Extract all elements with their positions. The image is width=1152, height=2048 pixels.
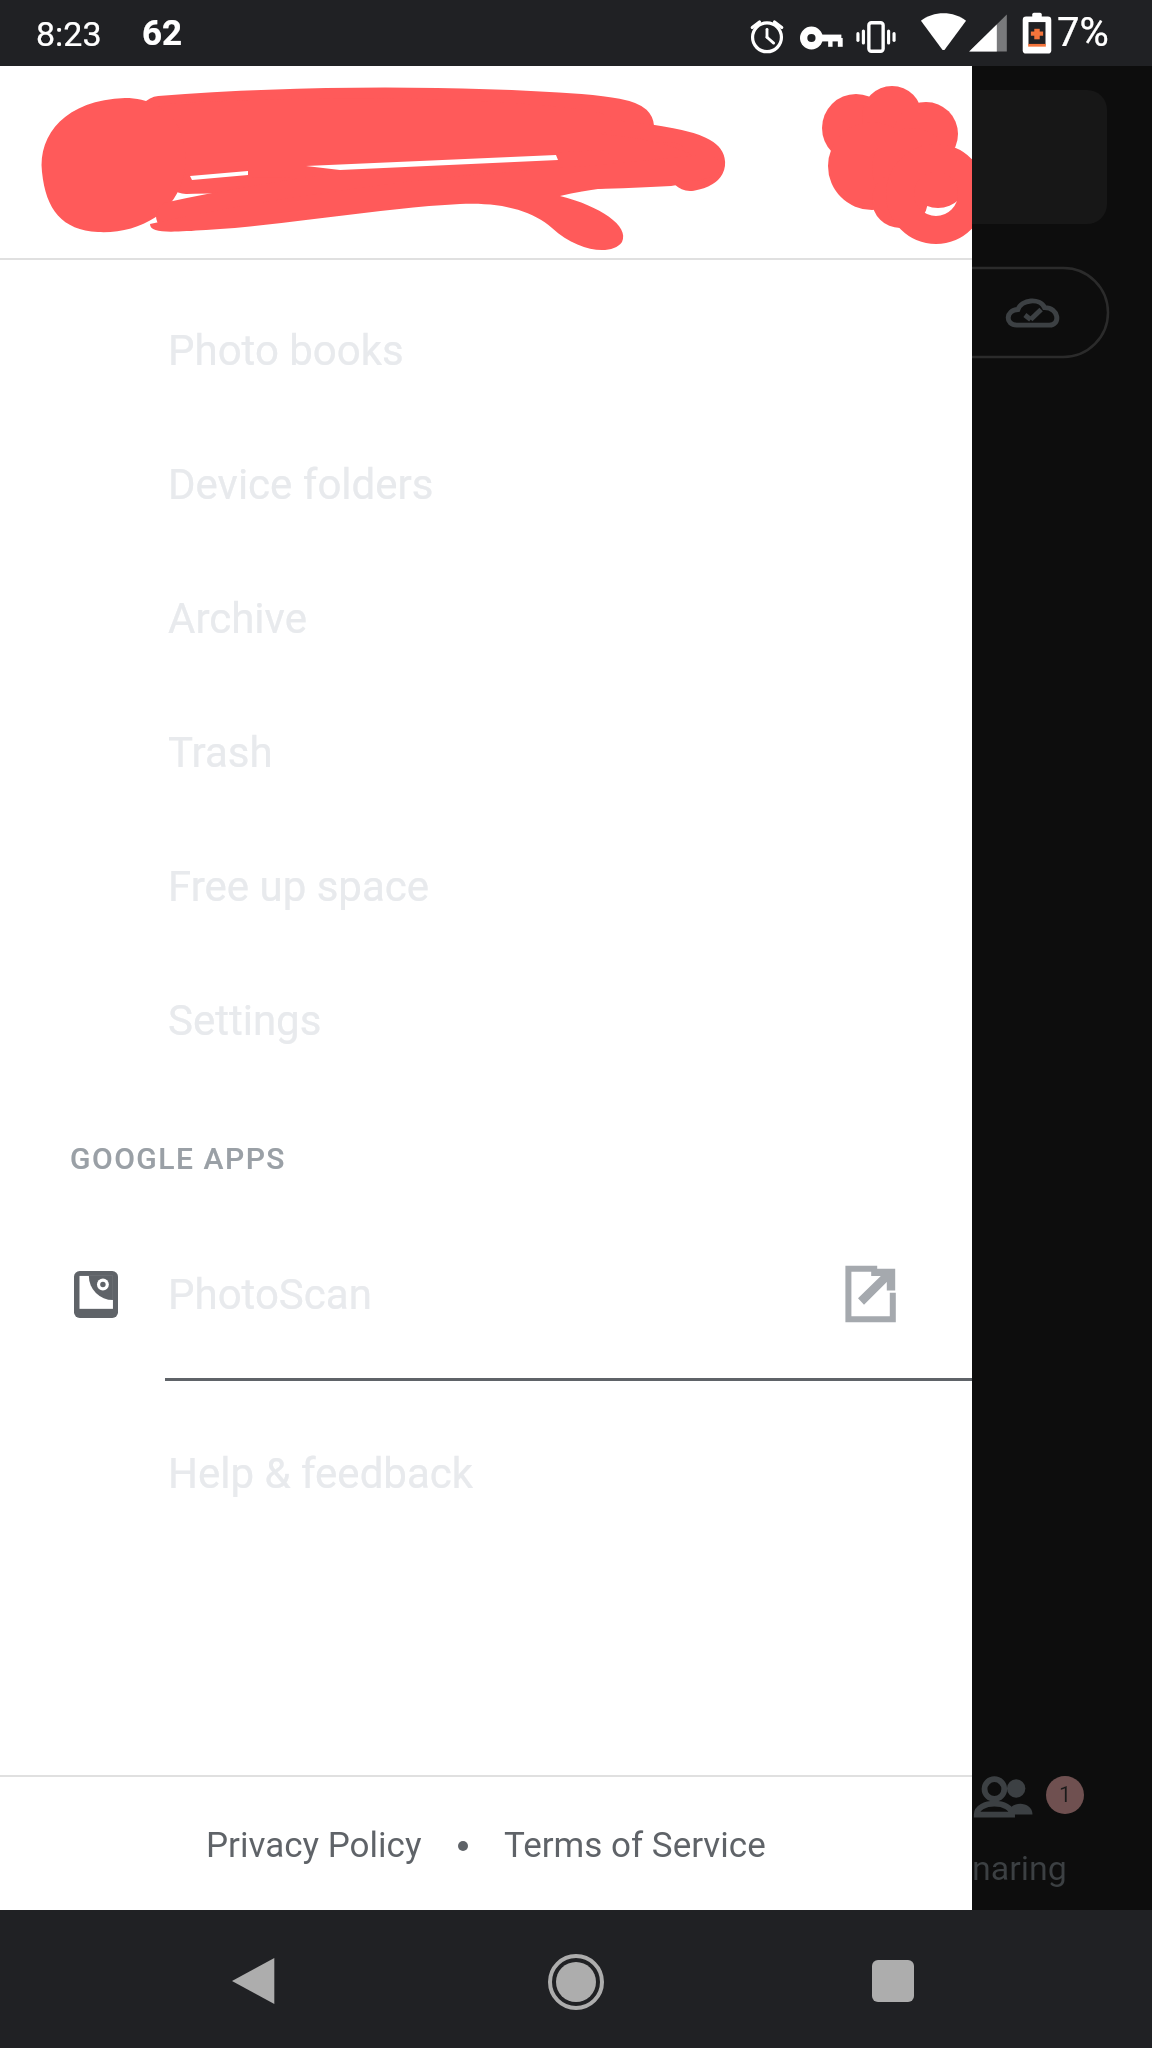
staticText: 7% (1057, 9, 1109, 56)
staticText: Help & feedback (168, 1449, 474, 1498)
button[interactable]: Back (232, 1958, 278, 2004)
button[interactable]: Free up space (0, 829, 972, 943)
button[interactable]: Home (550, 1956, 602, 2008)
button[interactable]: Terms of Service (496, 1813, 774, 1878)
staticText: Privacy Policy (206, 1825, 422, 1866)
button[interactable]: Sharing (960, 1760, 1152, 1910)
button[interactable]: PhotoScan (0, 1232, 972, 1356)
staticText: GOOGLE APPS (70, 1141, 286, 1176)
staticText: Settings (168, 996, 322, 1045)
staticText: Terms of Service (504, 1825, 766, 1866)
staticText: naring (972, 1848, 1067, 1888)
button[interactable]: Photo books (0, 293, 972, 407)
button[interactable]: Device folders (0, 427, 972, 541)
button[interactable]: Account (0, 66, 972, 258)
button[interactable]: Help & feedback (0, 1416, 972, 1530)
button[interactable]: Recents (872, 1960, 914, 2002)
staticText: Photo books (168, 326, 404, 375)
staticText: Free up space (168, 862, 430, 911)
staticText: 8:23 (36, 14, 102, 54)
button[interactable]: Privacy Policy (198, 1813, 430, 1878)
staticText: Trash (168, 728, 273, 777)
staticText: Device folders (168, 460, 434, 509)
staticText: 62 (142, 13, 183, 54)
staticText: Archive (168, 594, 307, 643)
staticText: PhotoScan (168, 1270, 372, 1319)
button[interactable]: Backup complete (900, 268, 1108, 357)
button[interactable]: Open PhotoScan (812, 1236, 928, 1352)
staticText: 1 (1059, 1782, 1072, 1808)
